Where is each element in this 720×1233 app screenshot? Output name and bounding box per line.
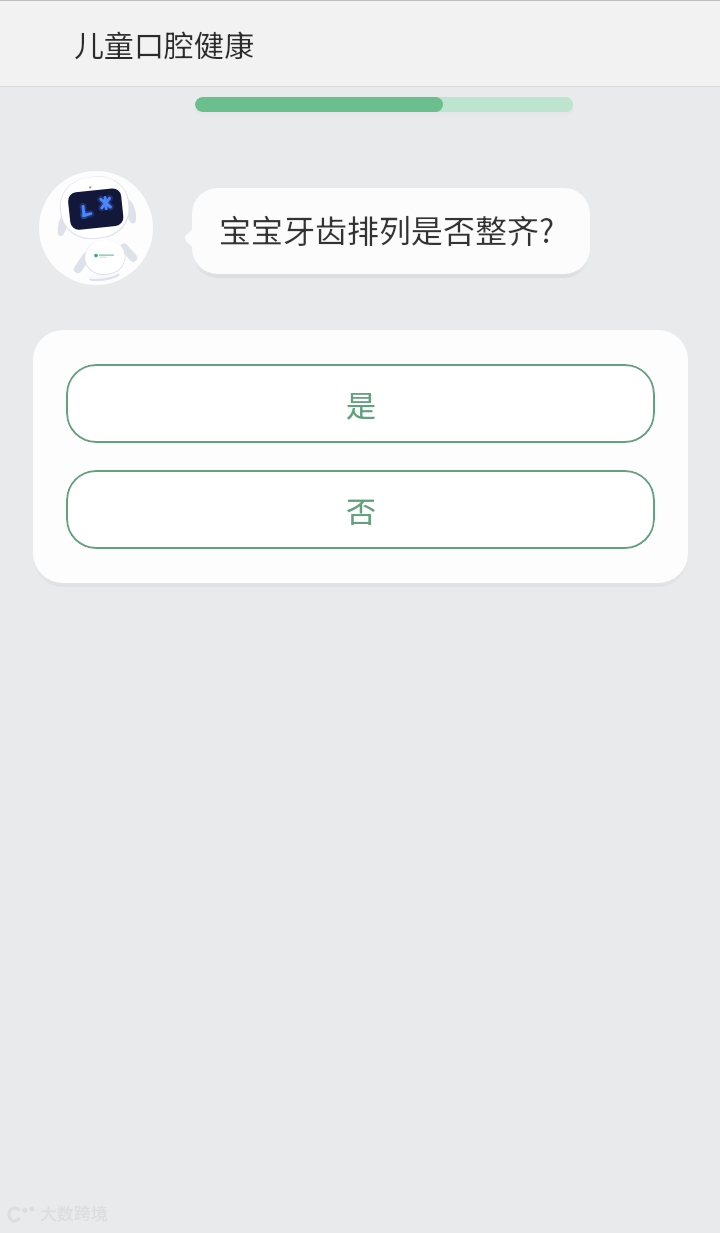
other: 助手头像 [39,171,153,285]
button[interactable]: 否 [66,470,655,549]
staticText: 是 [346,382,376,425]
staticText: 宝宝牙齿排列是否整齐? [219,206,555,252]
staticText: 儿童口腔健康 [74,22,254,65]
staticText: 大数跨境 [40,1200,108,1225]
button[interactable]: 是 [66,364,655,443]
staticText: 否 [346,488,376,531]
